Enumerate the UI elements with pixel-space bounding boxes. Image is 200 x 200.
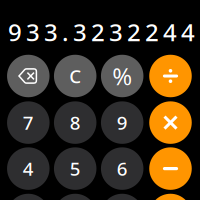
staticText: C xyxy=(69,64,81,88)
button[interactable]: Multiply xyxy=(148,101,192,144)
button[interactable]: 3 xyxy=(100,194,144,200)
staticText: 9 xyxy=(117,110,128,135)
button[interactable]: % xyxy=(100,55,144,97)
button[interactable]: 9 xyxy=(100,101,144,144)
staticText: 8 xyxy=(70,110,81,135)
button[interactable]: 7 xyxy=(6,101,50,144)
button[interactable]: 1 xyxy=(6,194,50,200)
button[interactable]: Minus xyxy=(148,147,192,190)
button[interactable]: Divide xyxy=(148,55,192,97)
staticText: 6 xyxy=(117,156,128,181)
button[interactable]: 8 xyxy=(53,101,97,144)
staticText: % xyxy=(112,60,132,92)
staticText: 7 xyxy=(23,110,34,135)
button[interactable]: 5 xyxy=(53,147,97,190)
staticText: 933.3232244 xyxy=(8,16,195,48)
button[interactable]: 4 xyxy=(6,147,50,190)
button[interactable]: Delete xyxy=(6,55,50,97)
button[interactable]: 2 xyxy=(53,194,97,200)
button[interactable]: 6 xyxy=(100,147,144,190)
staticText: 5 xyxy=(70,156,81,181)
staticText: 4 xyxy=(23,156,34,181)
button[interactable]: C xyxy=(53,55,97,97)
button[interactable]: Plus xyxy=(148,194,192,200)
